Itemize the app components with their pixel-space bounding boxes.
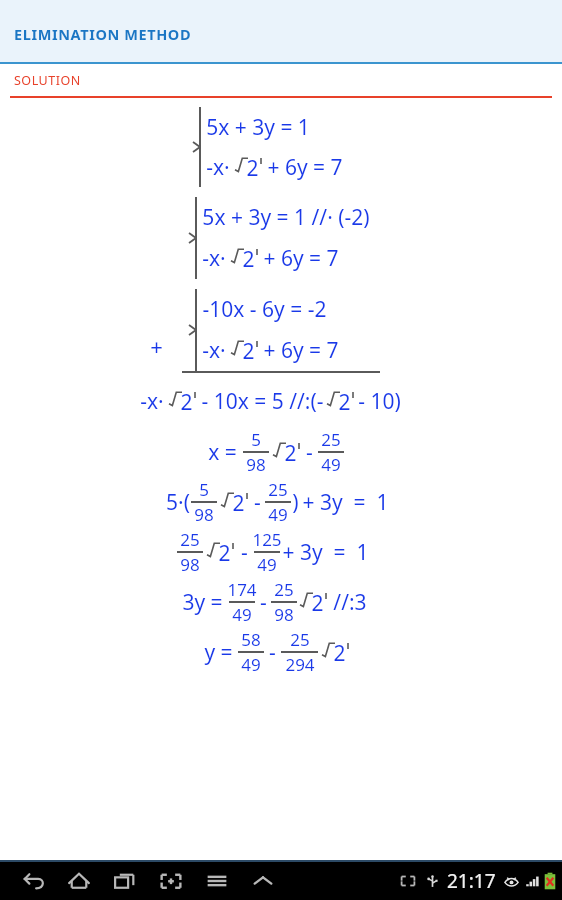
staticText: 5x + 3y = 1 //· (-2) (202, 203, 370, 232)
staticText: 2 (246, 154, 259, 183)
staticText: 25 (268, 478, 288, 501)
button[interactable]: SOLUTION (0, 64, 562, 96)
staticText: 2 (338, 388, 351, 417)
staticText: - (254, 488, 261, 517)
staticText: x = (208, 438, 237, 467)
staticText: 49 (268, 503, 288, 526)
button[interactable]: Menu (194, 862, 240, 900)
staticText: //:3 (333, 588, 367, 617)
staticText: SOLUTION (14, 72, 81, 89)
button[interactable]: Screenshot (148, 862, 194, 900)
staticText: + 6y = 7 (263, 336, 339, 365)
staticText: -x· (206, 153, 230, 182)
staticText: ) (292, 488, 299, 517)
staticText: -10x - 6y = -2 (202, 295, 327, 324)
staticText: + (150, 331, 163, 361)
staticText: y = (204, 638, 233, 667)
staticText: -x· (140, 387, 164, 416)
staticText: - 10) (358, 387, 401, 416)
button[interactable]: Back (10, 862, 56, 900)
staticText: ELIMINATION METHOD (14, 24, 192, 44)
staticText: 98 (274, 603, 294, 626)
staticText: 49 (232, 603, 252, 626)
staticText: 5x + 3y = 1 (206, 113, 310, 142)
staticText: 5 (251, 428, 261, 451)
staticText: + 3y = 1 (282, 538, 369, 567)
staticText: 25 (274, 578, 294, 601)
staticText: 2 (232, 489, 245, 518)
staticText: 2 (333, 639, 346, 668)
staticText: 49 (241, 653, 261, 676)
staticText: - (306, 438, 313, 467)
staticText: 49 (321, 453, 341, 476)
staticText: 5 (199, 478, 209, 501)
staticText: -x· (202, 244, 226, 273)
staticText: 98 (194, 503, 214, 526)
button[interactable]: Recent apps (102, 862, 148, 900)
staticText: 2 (218, 539, 231, 568)
staticText: - (241, 538, 248, 567)
staticText: 49 (257, 553, 277, 576)
button[interactable]: ELIMINATION METHOD (0, 0, 562, 62)
staticText: - (260, 588, 267, 617)
staticText: + 6y = 7 (267, 153, 343, 182)
staticText: 174 (227, 578, 257, 601)
button[interactable]: Home (56, 862, 102, 900)
staticText: 25 (321, 428, 341, 451)
staticText: - (269, 638, 276, 667)
staticText: 2 (311, 589, 324, 618)
staticText: 294 (285, 653, 315, 676)
staticText: 25 (180, 528, 200, 551)
staticText: 98 (180, 553, 200, 576)
staticText: 58 (241, 628, 261, 651)
staticText: 5·( (166, 488, 190, 517)
staticText: 2 (284, 439, 297, 468)
staticText: + 6y = 7 (263, 244, 339, 273)
staticText: 2 (180, 388, 193, 417)
staticText: -x· (202, 336, 226, 365)
staticText: 2 (242, 337, 255, 366)
staticText: 125 (252, 528, 282, 551)
staticText: - 10x = 5 //:(- (201, 387, 324, 416)
staticText: 25 (290, 628, 310, 651)
button[interactable]: Expand (240, 862, 286, 900)
staticText: 3y = (182, 588, 223, 617)
staticText: + 3y = 1 (302, 488, 389, 517)
staticText: 21:17 (447, 868, 496, 894)
staticText: 2 (242, 245, 255, 274)
staticText: 98 (246, 453, 266, 476)
